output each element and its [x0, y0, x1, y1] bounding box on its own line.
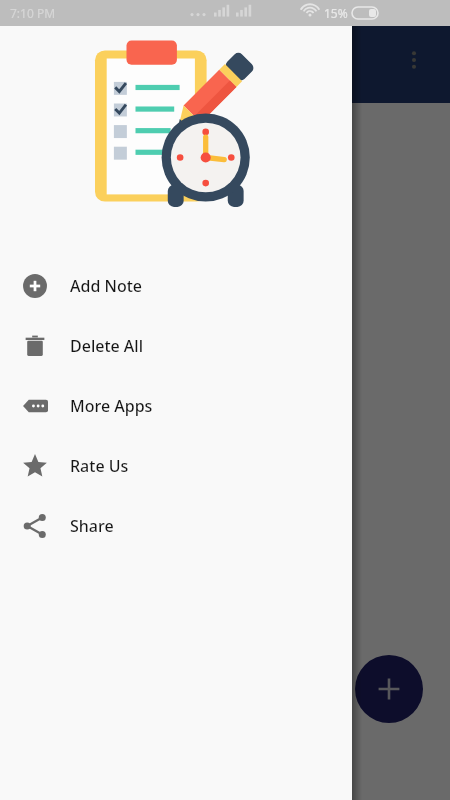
button[interactable]: Add Note: [0, 256, 352, 316]
staticText: Share: [70, 515, 114, 537]
button[interactable]: More options: [392, 38, 436, 82]
staticText: 7:10 PM: [10, 5, 56, 21]
staticText: Rate Us: [70, 455, 129, 477]
button[interactable]: Share: [0, 496, 352, 556]
staticText: Delete All: [70, 335, 143, 357]
staticText: Add Note: [70, 275, 142, 297]
button[interactable]: More Apps: [0, 376, 352, 436]
button[interactable]: Delete All: [0, 316, 352, 376]
staticText: 15%: [324, 5, 348, 21]
button[interactable]: Add: [355, 655, 423, 723]
staticText: More Apps: [70, 395, 153, 417]
button[interactable]: Rate Us: [0, 436, 352, 496]
